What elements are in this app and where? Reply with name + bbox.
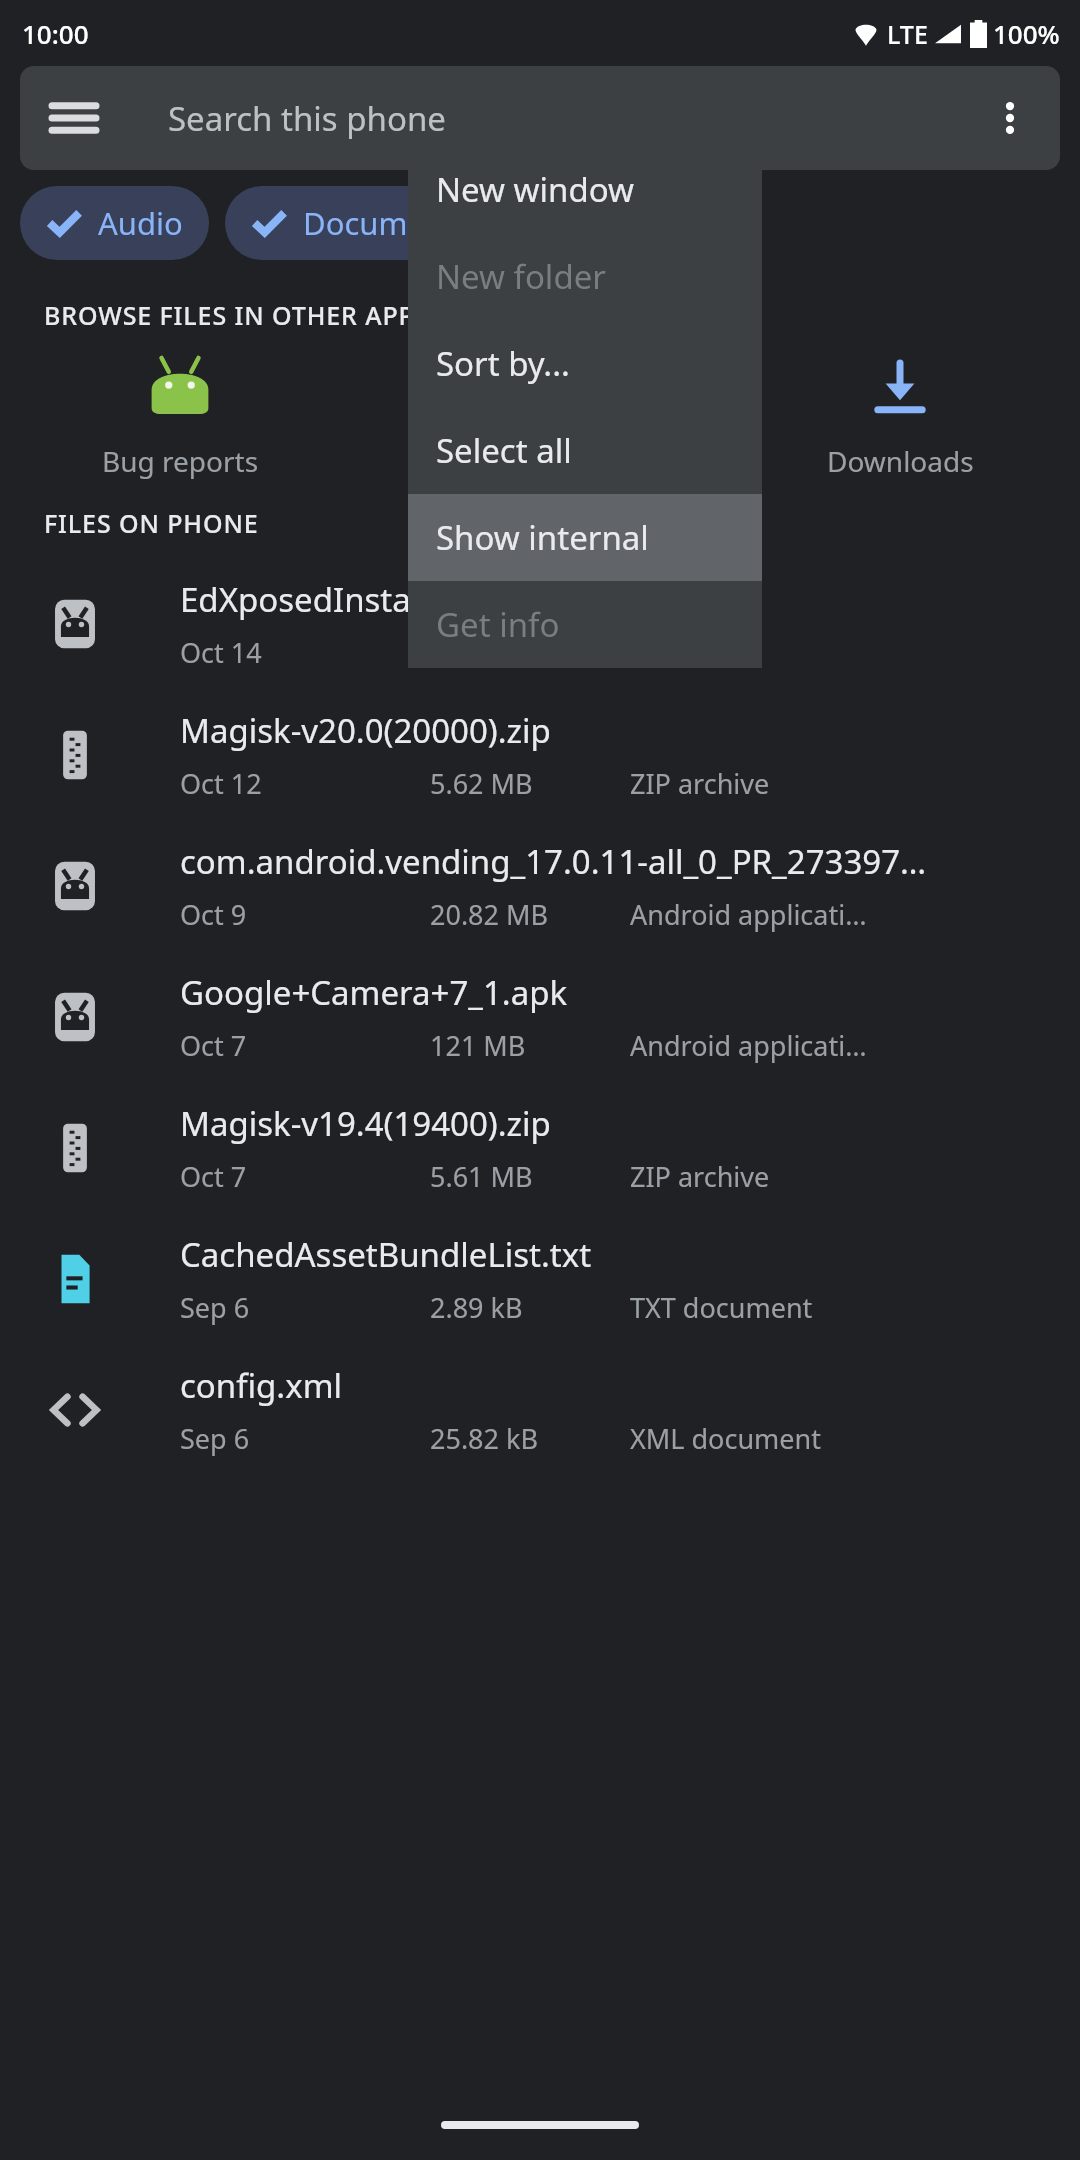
- button[interactable]: Magisk-v19.4(19400).zip: [0, 1082, 1080, 1213]
- staticText: 100%: [993, 16, 1060, 51]
- staticText: Select all: [436, 428, 572, 473]
- staticText: FILES ON PHONE: [44, 506, 259, 540]
- staticText: ZIP archive: [630, 1158, 770, 1195]
- staticText: New folder: [436, 254, 606, 299]
- staticText: 5.61 MB: [430, 1158, 630, 1195]
- staticText: Get info: [436, 602, 560, 647]
- button[interactable]: Show internal storage: [408, 494, 762, 581]
- staticText: Oct 14: [180, 634, 430, 671]
- button[interactable]: New folder: [408, 233, 762, 320]
- staticText: Magisk-v20.0(20000).zip: [180, 708, 551, 753]
- staticText: Documents: [303, 202, 471, 244]
- staticText: Android applicati…: [630, 1027, 867, 1064]
- staticText: 10:00: [22, 16, 89, 51]
- button[interactable]: New window: [408, 146, 762, 233]
- staticText: Oct 9: [180, 896, 430, 933]
- button[interactable]: Open navigation drawer: [20, 66, 1060, 170]
- button[interactable]: Documents: [225, 186, 497, 260]
- staticText: Search this phone: [168, 96, 446, 141]
- staticText: config.xml: [180, 1363, 343, 1408]
- staticText: Bug reports: [102, 442, 259, 480]
- button[interactable]: Open navigation drawer: [44, 88, 104, 148]
- staticText: Sep 6: [180, 1289, 430, 1326]
- button[interactable]: Sort by...: [408, 320, 762, 407]
- staticText: com.android.vending_17.0.11-all_0_PR_273…: [180, 839, 927, 884]
- staticText: 4.4: [430, 634, 630, 671]
- staticText: XML document: [630, 1420, 821, 1457]
- staticText: 121 MB: [430, 1027, 630, 1064]
- staticText: Sep 6: [180, 1420, 430, 1457]
- button[interactable]: More options: [980, 88, 1040, 148]
- staticText: Google+Camera+7_1.apk: [180, 970, 568, 1015]
- staticText: Show internal storage: [436, 515, 734, 560]
- staticText: BROWSE FILES IN OTHER APPS: [44, 298, 430, 332]
- button[interactable]: Get info: [408, 581, 762, 668]
- staticText: ZIP archive: [630, 765, 770, 802]
- staticText: Magisk-v19.4(19400).zip: [180, 1101, 551, 1146]
- button[interactable]: Images: [513, 186, 726, 260]
- staticText: Android applicati…: [630, 896, 867, 933]
- button[interactable]: Drive: [360, 352, 720, 480]
- staticText: 25.82 kB: [430, 1420, 630, 1457]
- staticText: 2.89 kB: [430, 1289, 630, 1326]
- staticText: LTE: [887, 17, 928, 51]
- staticText: 5.62 MB: [430, 765, 630, 802]
- staticText: EdXposedInstaller_v2: [180, 577, 511, 622]
- button[interactable]: com.android.vending_17.0.11-all_0_PR_273…: [0, 820, 1080, 951]
- button[interactable]: Downloads: [720, 352, 1080, 480]
- button[interactable]: Bug reports: [0, 352, 360, 480]
- staticText: TXT document: [630, 1289, 813, 1326]
- staticText: Oct 7: [180, 1027, 430, 1064]
- button[interactable]: Google+Camera+7_1.apk: [0, 951, 1080, 1082]
- staticText: Downloads: [827, 442, 974, 480]
- staticText: New window: [436, 167, 634, 212]
- staticText: Sort by...: [436, 341, 570, 386]
- staticText: Oct 12: [180, 765, 430, 802]
- staticText: Drive: [505, 442, 575, 480]
- button[interactable]: CachedAssetBundleList.txt: [0, 1213, 1080, 1344]
- button[interactable]: Magisk-v20.0(20000).zip: [0, 689, 1080, 820]
- button[interactable]: Select all: [408, 407, 762, 494]
- staticText: Oct 7: [180, 1158, 430, 1195]
- button[interactable]: config.xml: [0, 1344, 1080, 1475]
- staticText: CachedAssetBundleList.txt: [180, 1232, 592, 1277]
- staticText: Audio: [98, 202, 183, 244]
- button[interactable]: EdXposedInstaller_v2: [0, 558, 1080, 689]
- button[interactable]: Audio: [20, 186, 209, 260]
- staticText: 20.82 MB: [430, 896, 630, 933]
